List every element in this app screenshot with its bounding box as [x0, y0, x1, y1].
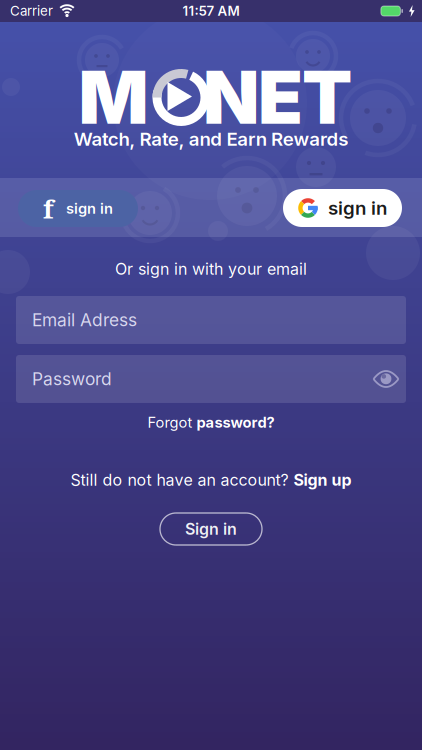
button[interactable]: Password	[16, 355, 406, 403]
staticText: Watch, Rate, and Earn Rewards	[74, 128, 348, 150]
staticText: 11:57 AM	[182, 3, 239, 19]
staticText: f	[43, 191, 54, 226]
staticText: Password	[32, 369, 112, 389]
staticText: Email Adress	[32, 310, 137, 330]
button[interactable]: Still do not have an account? Sign up	[70, 471, 351, 489]
button[interactable]: Forgot password?	[147, 414, 274, 431]
button[interactable]: sign in	[283, 189, 402, 227]
staticText: Still do not have an account? Sign up	[70, 471, 351, 489]
staticText: sign in	[66, 200, 113, 217]
button[interactable]: Email Adress	[16, 296, 406, 344]
staticText: Carrier	[10, 3, 53, 19]
staticText: Sign in	[185, 520, 237, 538]
staticText: NET	[203, 54, 352, 140]
button[interactable]: Sign in	[160, 513, 262, 545]
button[interactable]: f	[18, 190, 138, 227]
staticText: Or sign in with your email	[115, 260, 307, 278]
staticText: M	[78, 54, 148, 140]
staticText: Forgot password?	[147, 414, 274, 431]
staticText: sign in	[328, 197, 387, 219]
